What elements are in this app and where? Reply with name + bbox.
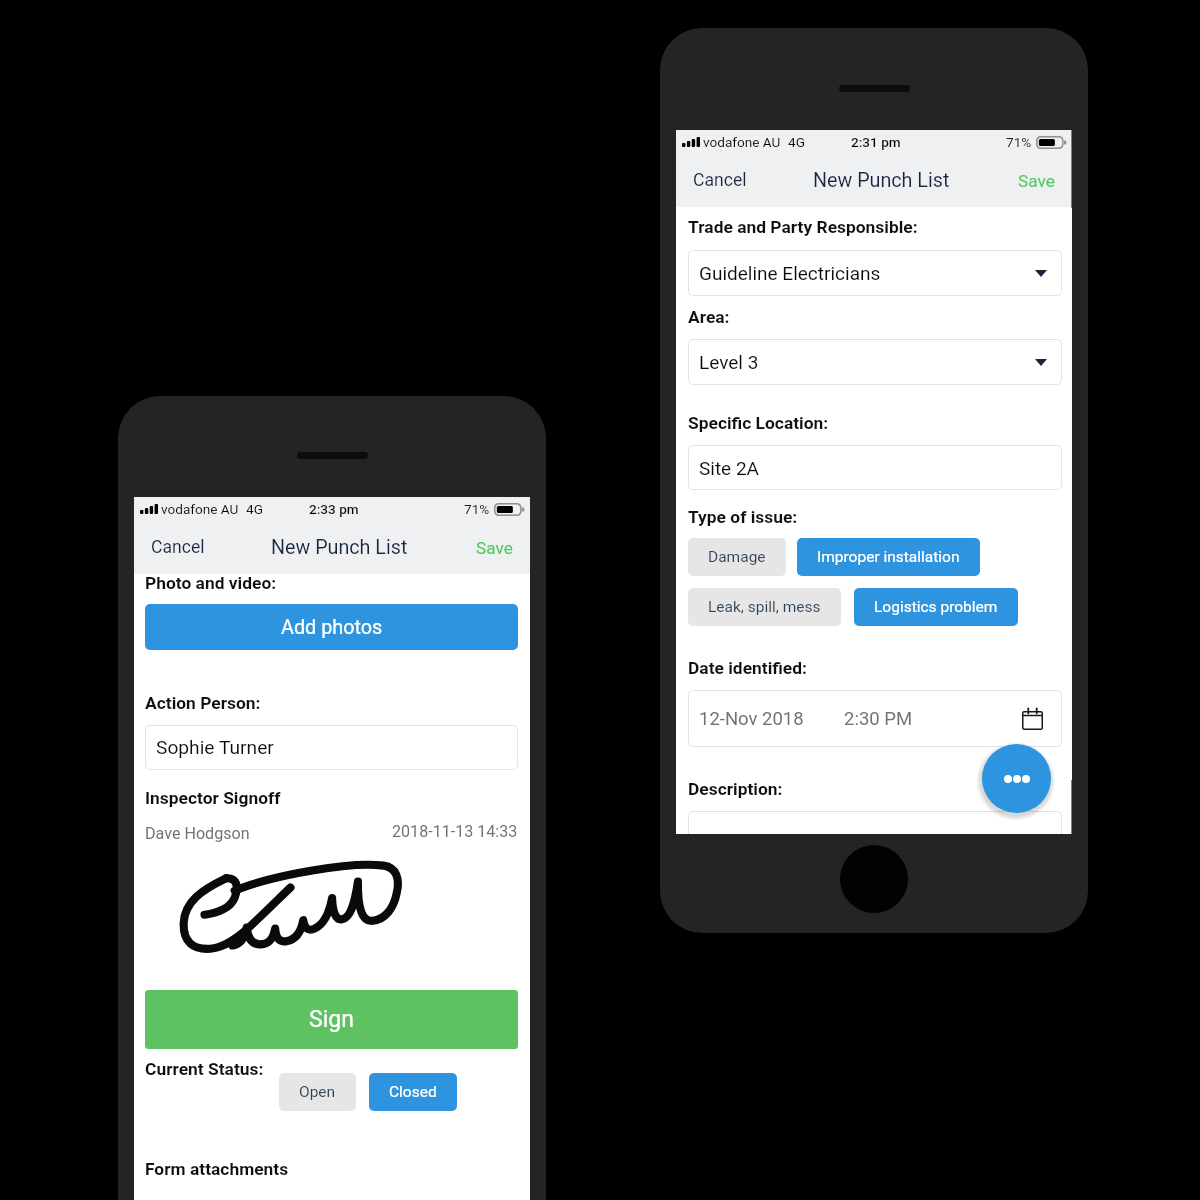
- staticText: Logistics problem: [874, 598, 998, 616]
- staticText: 2:33 pm: [309, 501, 359, 517]
- button[interactable]: Guideline Electricians: [688, 250, 1062, 296]
- staticText: 2:30 PM: [844, 708, 913, 730]
- staticText: Save: [1018, 171, 1055, 191]
- staticText: Type of issue:: [688, 507, 798, 527]
- button[interactable]: Open: [279, 1073, 356, 1111]
- button[interactable]: Damage: [688, 538, 786, 576]
- staticText: Site 2A: [699, 457, 759, 479]
- button[interactable]: Cancel: [134, 521, 219, 574]
- button[interactable]: Save: [462, 521, 530, 574]
- button[interactable]: Cancel: [676, 154, 761, 207]
- staticText: 4G: [246, 501, 263, 517]
- staticText: Sign: [309, 1006, 354, 1033]
- staticText: Inspector Signoff: [145, 788, 281, 808]
- staticText: Cancel: [693, 170, 747, 191]
- staticText: Trade and Party Responsible:: [688, 217, 918, 237]
- button[interactable]: Logistics problem: [854, 588, 1018, 626]
- button[interactable]: [688, 811, 1062, 834]
- button[interactable]: Closed: [369, 1073, 457, 1111]
- staticText: 71%: [464, 501, 490, 517]
- staticText: Save: [476, 538, 513, 558]
- staticText: Open: [299, 1083, 336, 1101]
- button[interactable]: More actions: [982, 744, 1051, 813]
- staticText: Date identified:: [688, 658, 807, 678]
- staticText: Photo and video:: [145, 573, 277, 593]
- staticText: Specific Location:: [688, 413, 829, 433]
- staticText: Improper installation: [817, 548, 960, 566]
- staticText: 4G: [788, 134, 805, 150]
- staticText: Add photos: [281, 616, 383, 639]
- button[interactable]: Add photos: [145, 604, 518, 650]
- staticText: Guideline Electricians: [699, 262, 881, 284]
- staticText: Form attachments: [145, 1159, 289, 1179]
- staticText: New Punch List: [813, 169, 950, 192]
- staticText: Level 3: [699, 351, 759, 373]
- button[interactable]: Pick date: [1008, 690, 1062, 747]
- staticText: Description:: [688, 779, 783, 799]
- staticText: 2:31 pm: [851, 134, 901, 150]
- staticText: Damage: [708, 548, 766, 566]
- staticText: Action Person:: [145, 693, 261, 713]
- staticText: Leak, spill, mess: [708, 598, 821, 616]
- staticText: Cancel: [151, 537, 205, 558]
- button[interactable]: Save: [1004, 154, 1072, 207]
- staticText: Sophie Turner: [156, 736, 274, 759]
- staticText: Current Status:: [145, 1059, 264, 1079]
- staticText: vodafone AU: [703, 134, 781, 150]
- button[interactable]: Level 3: [688, 339, 1062, 385]
- button[interactable]: Sophie Turner: [145, 725, 518, 770]
- staticText: New Punch List: [271, 536, 408, 559]
- staticText: Closed: [389, 1083, 437, 1101]
- staticText: 71%: [1006, 134, 1032, 150]
- staticText: 2018-11-13 14:33: [392, 822, 518, 841]
- button[interactable]: Leak, spill, mess: [688, 588, 841, 626]
- staticText: 12-Nov 2018: [699, 708, 804, 730]
- staticText: Dave Hodgson: [145, 824, 250, 843]
- button[interactable]: Improper installation: [797, 538, 980, 576]
- staticText: vodafone AU: [161, 501, 239, 517]
- button[interactable]: Sign: [145, 990, 518, 1049]
- button[interactable]: 12-Nov 2018: [688, 690, 1062, 747]
- staticText: Area:: [688, 307, 730, 327]
- button[interactable]: Site 2A: [688, 445, 1062, 490]
